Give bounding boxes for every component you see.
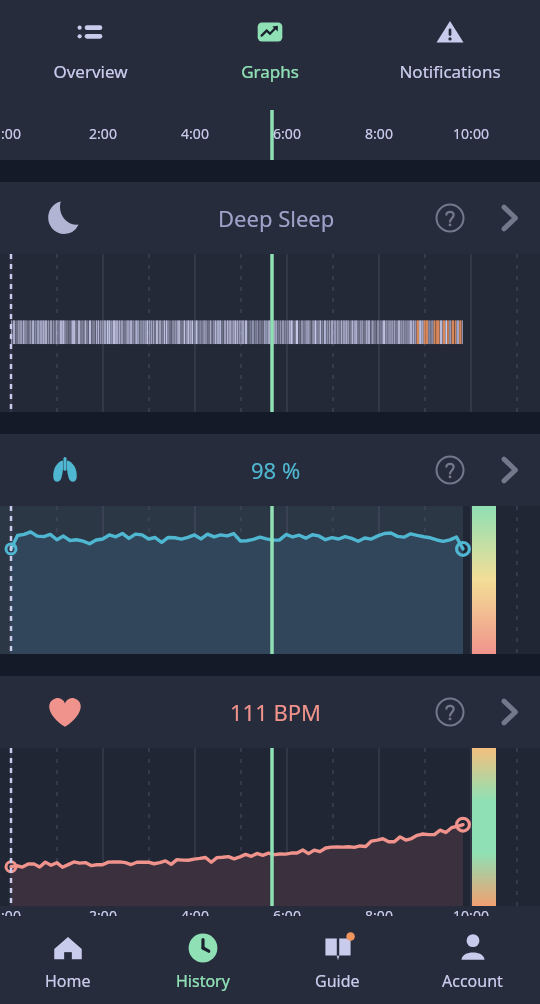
button[interactable]: Home bbox=[0, 916, 135, 1004]
staticText: History bbox=[176, 970, 230, 992]
button[interactable]: Notifications bbox=[360, 0, 540, 110]
staticText: Overview bbox=[53, 60, 128, 83]
staticText: Deep Sleep bbox=[218, 203, 335, 233]
staticText: Guide bbox=[315, 970, 360, 992]
staticText: :00 bbox=[0, 906, 37, 925]
staticText: Graphs bbox=[241, 60, 299, 83]
button[interactable]: Guide bbox=[270, 916, 405, 1004]
button[interactable]: Help about Deep Sleep bbox=[422, 190, 478, 246]
staticText: Account bbox=[442, 970, 503, 992]
staticText: 10:00 bbox=[445, 124, 497, 143]
staticText: 4:00 bbox=[169, 124, 221, 143]
button[interactable]: Deep Sleep bbox=[0, 182, 540, 254]
staticText: 8:00 bbox=[353, 124, 405, 143]
button[interactable]: Account bbox=[405, 916, 540, 1004]
button[interactable]: Open 98 % details bbox=[478, 439, 540, 501]
staticText: 98 % bbox=[251, 455, 301, 485]
staticText: 2:00 bbox=[77, 906, 129, 925]
button[interactable]: 98 % bbox=[0, 434, 540, 506]
button[interactable]: Help about 98 % bbox=[422, 442, 478, 498]
staticText: 6:00 bbox=[261, 906, 313, 925]
button[interactable]: Overview bbox=[0, 0, 180, 110]
staticText: :00 bbox=[0, 124, 37, 143]
staticText: 2:00 bbox=[77, 124, 129, 143]
button[interactable]: Graphs bbox=[180, 0, 360, 110]
button[interactable]: History bbox=[135, 916, 270, 1004]
button[interactable]: 111 BPM bbox=[0, 676, 540, 748]
staticText: Notifications bbox=[399, 60, 501, 83]
staticText: 111 BPM bbox=[230, 697, 322, 727]
staticText: 10:00 bbox=[445, 906, 497, 925]
staticText: 6:00 bbox=[261, 124, 313, 143]
staticText: 4:00 bbox=[169, 906, 221, 925]
staticText: Home bbox=[45, 970, 91, 992]
button[interactable]: Help about 111 BPM bbox=[422, 684, 478, 740]
button[interactable]: Open Deep Sleep details bbox=[478, 187, 540, 249]
button[interactable]: Open 111 BPM details bbox=[478, 681, 540, 743]
staticText: 8:00 bbox=[353, 906, 405, 925]
